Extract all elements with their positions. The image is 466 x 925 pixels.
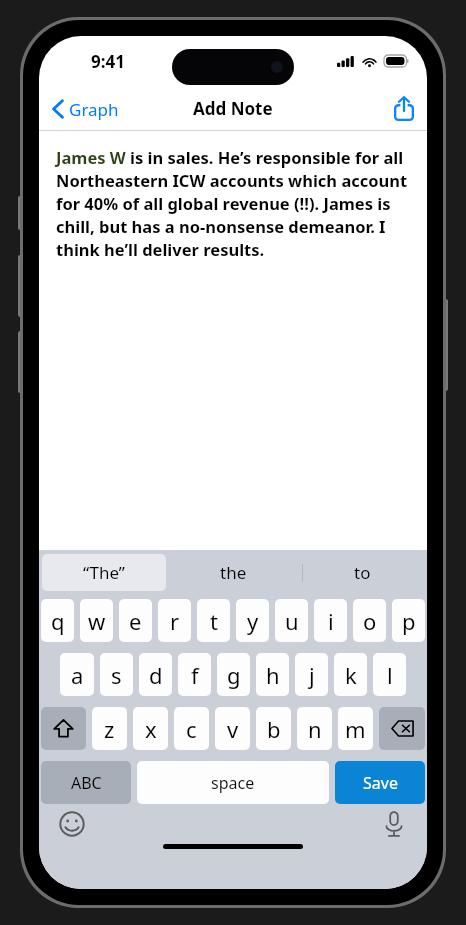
button[interactable]: h bbox=[256, 653, 289, 696]
staticText: t bbox=[210, 606, 218, 636]
button[interactable]: k bbox=[334, 653, 367, 696]
button[interactable]: f bbox=[178, 653, 211, 696]
button[interactable]: t bbox=[197, 599, 230, 642]
staticText: b bbox=[267, 714, 281, 744]
staticText: e bbox=[129, 606, 142, 636]
staticText: w bbox=[88, 606, 106, 636]
staticText: i bbox=[328, 606, 334, 636]
button[interactable]: w bbox=[80, 599, 113, 642]
staticText: r bbox=[170, 606, 180, 636]
staticText: “The” bbox=[83, 561, 125, 584]
staticText: the bbox=[220, 561, 247, 584]
button[interactable]: the bbox=[169, 550, 298, 595]
button[interactable]: Share bbox=[381, 86, 427, 131]
button[interactable]: to bbox=[298, 550, 427, 595]
button[interactable]: c bbox=[174, 707, 209, 750]
button[interactable]: s bbox=[100, 653, 133, 696]
button[interactable]: ABC bbox=[41, 761, 131, 804]
staticText: l bbox=[387, 660, 393, 690]
button[interactable]: q bbox=[41, 599, 74, 642]
staticText: Add Note bbox=[193, 97, 273, 120]
staticText: j bbox=[309, 660, 315, 690]
button[interactable]: Save bbox=[335, 761, 425, 804]
button[interactable]: n bbox=[297, 707, 332, 750]
button[interactable]: b bbox=[256, 707, 291, 750]
button[interactable]: Emoji bbox=[55, 807, 89, 841]
staticText: d bbox=[149, 660, 163, 690]
button[interactable]: d bbox=[139, 653, 172, 696]
staticText: q bbox=[51, 606, 65, 636]
staticText: p bbox=[402, 606, 416, 636]
staticText: Save bbox=[363, 772, 398, 794]
staticText: a bbox=[71, 660, 84, 690]
button[interactable]: z bbox=[92, 707, 127, 750]
staticText: z bbox=[104, 714, 115, 744]
button[interactable]: l bbox=[373, 653, 406, 696]
staticText: c bbox=[186, 714, 197, 744]
button[interactable]: Backspace bbox=[379, 707, 425, 750]
button[interactable]: space bbox=[137, 761, 329, 804]
button[interactable]: Graph bbox=[39, 87, 129, 131]
button[interactable]: x bbox=[133, 707, 168, 750]
staticText: u bbox=[285, 606, 299, 636]
staticText: 9:41 bbox=[91, 50, 125, 73]
staticText: k bbox=[345, 660, 357, 690]
button[interactable]: v bbox=[215, 707, 250, 750]
staticText: f bbox=[191, 660, 199, 690]
button[interactable]: a bbox=[60, 653, 94, 696]
button[interactable]: r bbox=[158, 599, 191, 642]
button[interactable]: o bbox=[353, 599, 386, 642]
button[interactable]: m bbox=[338, 707, 373, 750]
staticText: ABC bbox=[71, 772, 102, 794]
button[interactable]: “The” bbox=[42, 554, 166, 591]
staticText: n bbox=[308, 714, 322, 744]
staticText: g bbox=[227, 660, 241, 690]
button[interactable]: j bbox=[295, 653, 328, 696]
staticText: y bbox=[247, 606, 259, 636]
staticText: James W is in sales. He’s responsible fo… bbox=[56, 146, 413, 261]
staticText: m bbox=[345, 714, 366, 744]
button[interactable]: p bbox=[392, 599, 425, 642]
button[interactable]: i bbox=[314, 599, 347, 642]
button[interactable]: Dictate bbox=[377, 807, 411, 841]
staticText: to bbox=[354, 561, 371, 584]
staticText: Graph bbox=[69, 98, 119, 121]
button[interactable]: g bbox=[217, 653, 250, 696]
staticText: v bbox=[227, 714, 239, 744]
staticText: x bbox=[145, 714, 157, 744]
button[interactable]: Shift bbox=[41, 707, 86, 750]
button[interactable]: e bbox=[119, 599, 152, 642]
staticText: o bbox=[363, 606, 377, 636]
staticText: h bbox=[266, 660, 280, 690]
button[interactable]: y bbox=[236, 599, 269, 642]
staticText: space bbox=[211, 772, 255, 794]
staticText: s bbox=[111, 660, 122, 690]
button[interactable]: u bbox=[275, 599, 308, 642]
